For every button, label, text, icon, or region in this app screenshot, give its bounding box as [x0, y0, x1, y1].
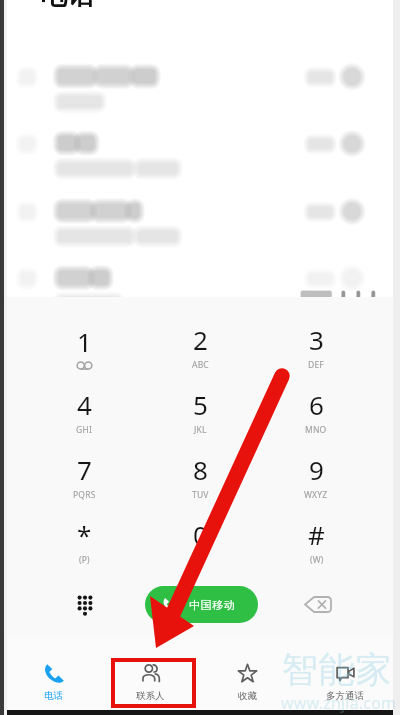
button[interactable]: 4 [26, 380, 142, 445]
button[interactable]: 5 [142, 380, 258, 445]
button[interactable]: 6 [258, 380, 374, 445]
staticText: 4 [77, 387, 92, 422]
staticText: 电话 [44, 690, 63, 702]
staticText: 电话 [40, 0, 94, 12]
staticText: www.znjia.com [281, 692, 397, 714]
button[interactable]: 多方通话 [296, 637, 393, 710]
staticText: 0 [193, 517, 208, 552]
staticText: ABC [192, 359, 209, 371]
button[interactable]: 9 [258, 445, 374, 510]
staticText: (P) [79, 554, 90, 566]
staticText: MNO [305, 424, 327, 436]
staticText: 联系人 [136, 690, 165, 702]
staticText: TUV [192, 489, 209, 501]
staticText: PQRS [73, 489, 96, 501]
button[interactable]: 3 [258, 315, 374, 380]
button[interactable]: Hide keypad [26, 582, 143, 626]
staticText: # [308, 517, 325, 552]
staticText: 7 [77, 452, 92, 487]
staticText: 2 [193, 322, 208, 357]
button[interactable]: 7 [26, 445, 142, 510]
staticText: + [198, 554, 204, 566]
staticText: 6 [309, 387, 324, 422]
staticText: (W) [310, 554, 324, 566]
staticText: 智能家 [281, 647, 392, 692]
button[interactable]: 中国移动 [145, 586, 258, 623]
staticText: DEF [308, 359, 324, 371]
button[interactable]: Backspace [256, 582, 374, 626]
button[interactable]: 0 [142, 510, 258, 575]
staticText: 多方通话 [326, 690, 364, 702]
staticText: 3 [309, 322, 324, 357]
button[interactable]: 联系人 [102, 637, 199, 710]
staticText: 收藏 [238, 690, 257, 702]
button[interactable]: 8 [142, 445, 258, 510]
button[interactable]: * [26, 510, 142, 575]
staticText: 8 [193, 452, 208, 487]
staticText: 9 [309, 452, 324, 487]
button[interactable]: 1 [26, 315, 142, 380]
button[interactable]: 收藏 [199, 637, 296, 710]
staticText: GHI [76, 424, 92, 436]
staticText: * [77, 517, 92, 552]
staticText: 1 [77, 324, 92, 359]
staticText: JKL [194, 424, 207, 436]
staticText: WXYZ [304, 489, 328, 501]
button[interactable]: 2 [142, 315, 258, 380]
button[interactable]: # [258, 510, 374, 575]
button[interactable]: 电话 [5, 637, 102, 710]
staticText: 5 [193, 387, 208, 422]
staticText: 中国移动 [189, 598, 236, 612]
